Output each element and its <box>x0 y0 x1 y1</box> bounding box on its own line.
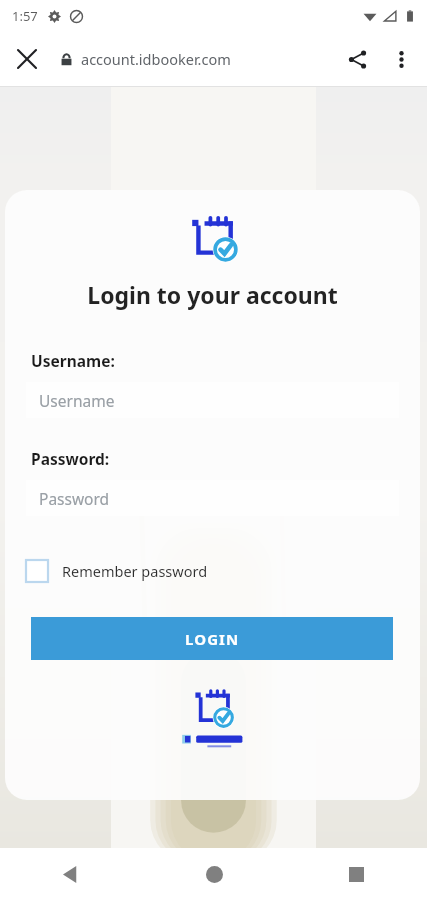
button[interactable]: Home <box>143 848 285 900</box>
staticText: account.idbooker.com <box>81 49 231 69</box>
button[interactable]: Close <box>6 38 48 80</box>
button[interactable]: LOGIN <box>31 617 393 660</box>
staticText: LOGIN <box>185 629 240 649</box>
button[interactable]: Password <box>26 480 399 516</box>
button[interactable]: Recent apps <box>285 848 427 900</box>
button[interactable]: Back <box>0 848 143 900</box>
staticText: Password: <box>31 448 110 469</box>
staticText: Remember password <box>62 561 208 581</box>
staticText: Login to your account <box>5 279 420 310</box>
staticText: 1:57 <box>12 7 38 25</box>
button[interactable]: Share <box>335 37 379 81</box>
staticText: Password <box>39 488 110 509</box>
staticText: Username: <box>31 350 115 371</box>
staticText: Username <box>39 390 115 411</box>
button[interactable]: More options <box>379 37 423 81</box>
button[interactable]: Remember password <box>26 558 208 584</box>
button[interactable]: Username <box>26 382 399 418</box>
